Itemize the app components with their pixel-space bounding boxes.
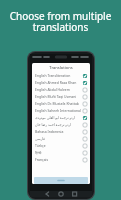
other: Not selected [83, 109, 87, 113]
other: Not selected [83, 158, 87, 162]
button[interactable]: English Dr. Mustafa Khattab [32, 100, 90, 107]
staticText: Français [35, 157, 49, 162]
button[interactable]: English Abdul Haleem [32, 86, 90, 93]
other: Not selected [83, 123, 87, 127]
other: Not selected [83, 88, 87, 92]
other: Selected [83, 74, 87, 78]
staticText: اردو ترجمہ ابو العلی مودودی [35, 115, 76, 120]
other: Not selected [83, 95, 87, 99]
button[interactable] [34, 177, 88, 184]
button[interactable]: English Saheeh International [32, 107, 90, 114]
staticText: हिन्दी [35, 150, 42, 155]
other: Selected [83, 116, 87, 120]
other: Not selected [83, 151, 87, 155]
other: Selected [83, 81, 87, 85]
button[interactable]: فارسی [32, 135, 90, 142]
other: Not selected [83, 137, 87, 141]
other: Not selected [83, 130, 87, 134]
staticText: Choose from multiple translations [6, 9, 115, 34]
staticText: Türkçe [35, 143, 46, 148]
button[interactable]: Bahasa Indonesia [32, 128, 90, 135]
staticText: English Saheeh International [35, 108, 81, 113]
button[interactable]: English Transliteration [32, 72, 90, 79]
button[interactable]: Türkçe [32, 142, 90, 149]
staticText: English Transliteration [35, 73, 71, 78]
other: Not selected [83, 144, 87, 148]
button[interactable]: Français [32, 156, 90, 163]
staticText: English Dr. Mustafa Khattab [35, 101, 79, 106]
other: Not selected [83, 102, 87, 106]
staticText: Translations [49, 65, 73, 70]
staticText: English Abdul Haleem [35, 87, 70, 92]
button[interactable]: English Mufti Taqi Usmani [32, 93, 90, 100]
staticText: English Mufti Taqi Usmani [35, 94, 77, 99]
button[interactable]: हिन्दी [32, 149, 90, 156]
staticText: English Ahmed Raza Khan [35, 80, 77, 85]
button[interactable]: اردو ترجمہ احمد رضا خان [32, 121, 90, 128]
staticText: اردو ترجمہ احمد رضا خان [35, 122, 72, 127]
staticText: Bahasa Indonesia [35, 129, 64, 134]
staticText: فارسی [35, 137, 45, 141]
button[interactable]: English Ahmed Raza Khan [32, 79, 90, 86]
button[interactable]: اردو ترجمہ ابو العلی مودودی [32, 114, 90, 121]
